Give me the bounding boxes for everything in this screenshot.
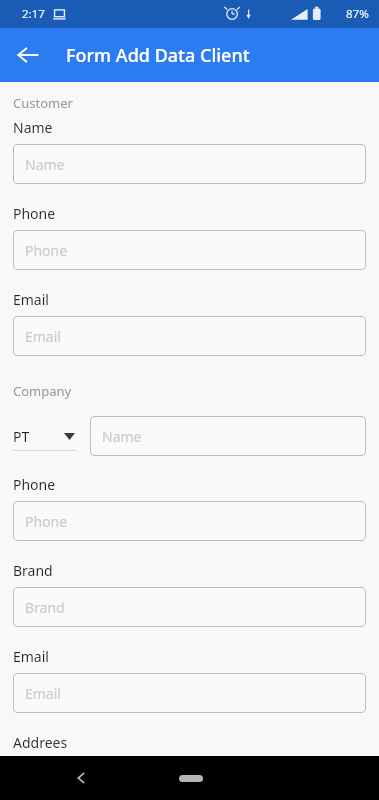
staticText: Phone [13, 475, 56, 494]
staticText: Name [25, 155, 65, 174]
button[interactable]: Name [90, 416, 366, 456]
staticText: Brand [13, 561, 53, 580]
staticText: PT [13, 427, 30, 446]
staticText: Phone [25, 512, 68, 531]
staticText: Name [13, 118, 53, 137]
staticText: Phone [13, 204, 56, 223]
staticText: Email [13, 647, 49, 666]
button[interactable]: Back [8, 35, 48, 75]
button[interactable]: Select company type [13, 422, 77, 451]
staticText: Name [102, 427, 142, 446]
button[interactable]: Phone [13, 501, 366, 541]
staticText: Email [25, 684, 61, 703]
button[interactable]: Brand [13, 587, 366, 627]
staticText: Addrees [13, 733, 68, 752]
button[interactable]: Email [13, 673, 366, 713]
staticText: Form Add Data Client [66, 43, 250, 68]
button[interactable]: Email [13, 316, 366, 356]
staticText: 87% [346, 6, 369, 22]
staticText: Brand [25, 598, 65, 617]
button[interactable]: Home [169, 761, 213, 795]
button[interactable]: Name [13, 144, 366, 184]
staticText: Email [25, 327, 61, 346]
staticText: Customer [13, 94, 73, 112]
staticText: Email [13, 290, 49, 309]
staticText: Phone [25, 241, 68, 260]
staticText: Company [13, 382, 72, 400]
button[interactable]: Phone [13, 230, 366, 270]
button[interactable]: Back [62, 759, 100, 797]
staticText: 2:17 [22, 6, 45, 22]
